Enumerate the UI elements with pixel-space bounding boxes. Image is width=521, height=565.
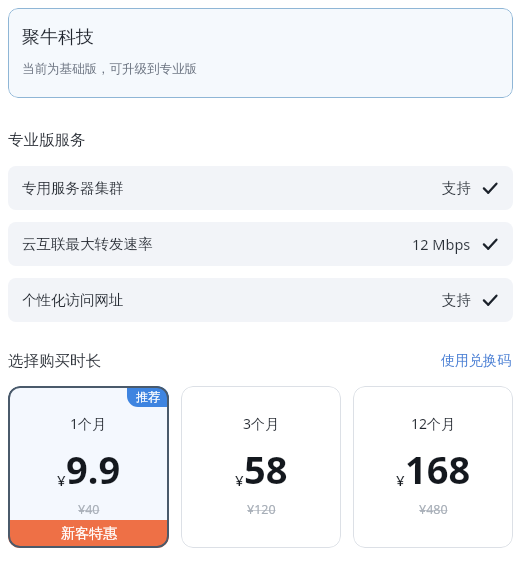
staticText: 支持 (442, 291, 471, 309)
staticText: 选择购买时长 (8, 351, 101, 371)
staticText: 个性化访问网址 (22, 291, 124, 309)
button[interactable]: 3个月 (181, 386, 341, 548)
staticText: 推荐 (136, 389, 160, 404)
staticText: ¥ (396, 470, 405, 490)
staticText: 当前为基础版，可升级到专业版 (22, 61, 197, 77)
staticText: 9.9 (66, 443, 121, 495)
button[interactable]: 专用服务器集群 (8, 166, 513, 210)
staticText: 新客特惠 (61, 525, 117, 543)
staticText: 支持 (442, 179, 471, 197)
staticText: 云互联最大转发速率 (22, 235, 153, 253)
staticText: ¥ (235, 470, 244, 490)
staticText: 12 Mbps (412, 234, 471, 254)
button[interactable]: 12个月 (353, 386, 513, 548)
button[interactable]: 云互联最大转发速率 (8, 222, 513, 266)
staticText: 1个月 (70, 414, 107, 433)
staticText: 168 (405, 443, 471, 495)
staticText: 专业版服务 (8, 130, 86, 150)
button[interactable]: 使用兑换码 (439, 350, 513, 372)
staticText: 58 (244, 443, 288, 495)
staticText: ¥120 (247, 501, 276, 518)
staticText: 3个月 (243, 414, 280, 433)
staticText: 聚牛科技 (22, 26, 94, 49)
staticText: 专用服务器集群 (22, 179, 124, 197)
button[interactable]: 1个月 (8, 386, 169, 548)
button[interactable]: 聚牛科技 (8, 8, 513, 98)
staticText: ¥40 (78, 501, 100, 518)
staticText: 使用兑换码 (441, 352, 511, 370)
button[interactable]: 个性化访问网址 (8, 278, 513, 322)
staticText: ¥ (57, 470, 66, 490)
staticText: ¥480 (419, 501, 448, 518)
staticText: 12个月 (411, 414, 456, 433)
